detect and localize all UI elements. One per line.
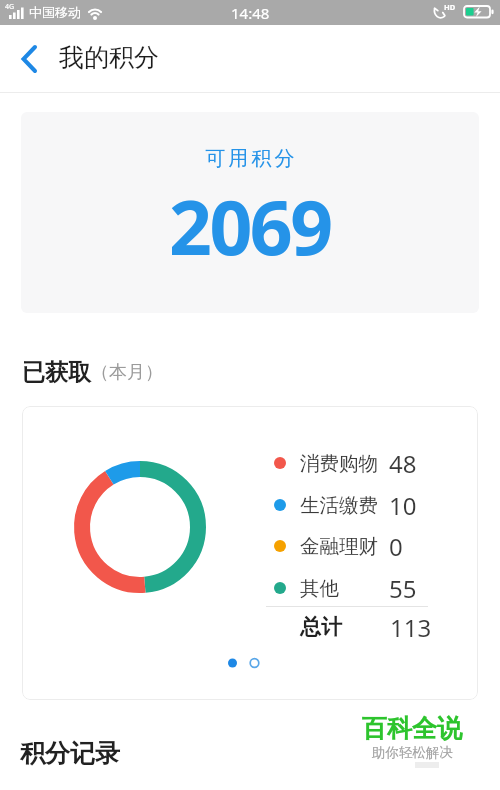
- button[interactable]: 生活缴费: [274, 489, 478, 521]
- staticText: 2069: [169, 175, 331, 277]
- staticText: 可用积分: [204, 146, 296, 171]
- staticText: 14:48: [231, 3, 270, 23]
- staticText: 金融理财: [300, 534, 378, 559]
- staticText: 生活缴费: [300, 493, 378, 518]
- staticText: 积分记录: [20, 738, 120, 769]
- staticText: 百科全说: [362, 713, 462, 744]
- staticText: 已获取: [22, 358, 91, 387]
- staticText: 113: [390, 611, 432, 643]
- staticText: 中国移动: [29, 4, 81, 20]
- button[interactable]: 金融理财: [274, 530, 478, 562]
- staticText: HD: [444, 2, 456, 12]
- button[interactable]: 其他: [274, 572, 478, 604]
- button[interactable]: 消费购物: [22, 406, 478, 700]
- button[interactable]: 可用积分: [21, 112, 479, 313]
- staticText: 我的积分: [59, 42, 159, 73]
- staticText: 10: [389, 489, 417, 521]
- staticText: 助你轻松解决: [372, 744, 453, 761]
- staticText: 消费购物: [300, 451, 378, 476]
- staticText: 55: [389, 572, 417, 604]
- staticText: （本月）: [91, 361, 163, 384]
- button[interactable]: [21, 45, 38, 73]
- button[interactable]: 消费购物: [274, 447, 478, 479]
- staticText: 总计: [300, 614, 342, 640]
- staticText: 0: [389, 530, 403, 562]
- staticText: 4G: [5, 2, 15, 12]
- staticText: 48: [389, 447, 417, 479]
- staticText: 其他: [300, 576, 339, 601]
